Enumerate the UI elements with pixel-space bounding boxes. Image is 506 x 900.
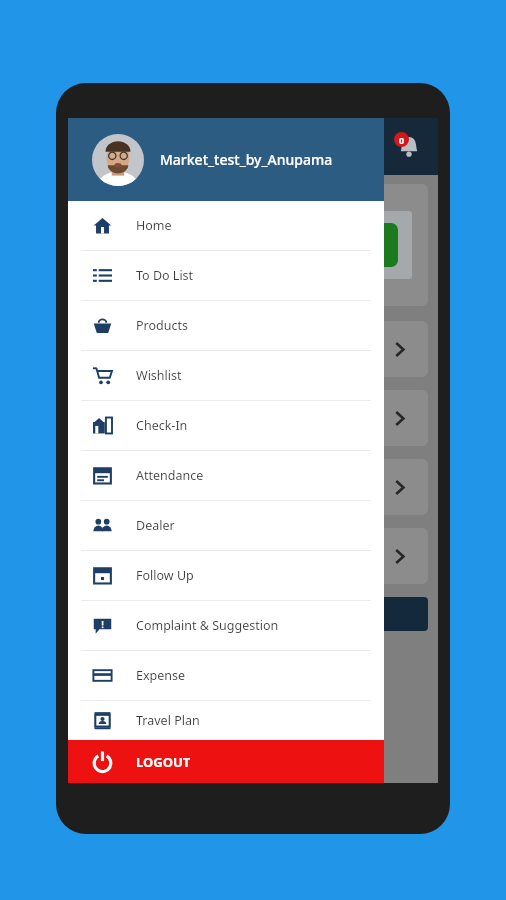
button[interactable] xyxy=(78,184,428,306)
staticText: Wishlist xyxy=(136,367,182,384)
button[interactable]: Attendance xyxy=(68,451,384,500)
button[interactable]: Check-In xyxy=(68,401,384,450)
button[interactable]: Dealer xyxy=(68,501,384,550)
staticText: Expense xyxy=(136,667,186,684)
button[interactable]: LOGOUT xyxy=(68,740,384,783)
button[interactable]: Market_test_by_Anupama xyxy=(68,118,384,201)
staticText: Complaint & Suggestion xyxy=(136,617,279,634)
button[interactable]: Products xyxy=(68,301,384,350)
button[interactable]: Notifications xyxy=(390,128,428,166)
staticText: Check-In xyxy=(136,417,188,434)
staticText: 0 xyxy=(399,134,405,146)
staticText: Attendance xyxy=(136,467,204,484)
button[interactable]: Travel Plan xyxy=(68,701,384,740)
staticText: To Do List xyxy=(136,267,194,284)
button[interactable]: Home xyxy=(68,201,384,250)
button[interactable]: Expense xyxy=(68,651,384,700)
staticText: LOGOUT xyxy=(136,753,191,771)
button[interactable] xyxy=(78,528,428,584)
staticText: Travel Plan xyxy=(136,712,200,729)
staticText: Market_test_by_Anupama xyxy=(160,150,333,169)
button[interactable] xyxy=(78,390,428,446)
button[interactable]: Follow Up xyxy=(68,551,384,600)
button[interactable] xyxy=(78,321,428,377)
staticText: Follow Up xyxy=(136,567,194,584)
button[interactable]: To Do List xyxy=(68,251,384,300)
staticText: Products xyxy=(136,317,188,334)
button[interactable] xyxy=(78,459,428,515)
staticText: Dealer xyxy=(136,517,175,534)
staticText: Home xyxy=(136,217,172,234)
button[interactable]: Complaint & Suggestion xyxy=(68,601,384,650)
button[interactable]: Wishlist xyxy=(68,351,384,400)
